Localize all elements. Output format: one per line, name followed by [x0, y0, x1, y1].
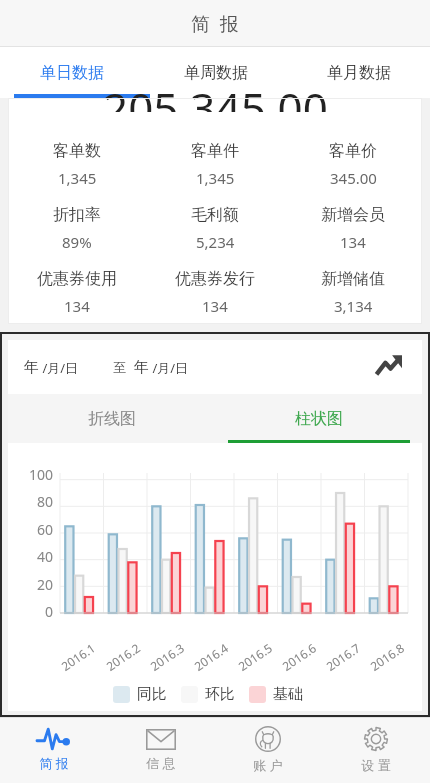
staticText: 同比 — [137, 685, 167, 704]
staticText: 折扣率 — [53, 205, 101, 225]
staticText: 1,345 — [58, 168, 97, 188]
button[interactable]: 毛利额 — [146, 196, 284, 260]
staticText: 新增储值 — [321, 269, 385, 289]
staticText: 优惠券使用 — [37, 269, 117, 289]
staticText: /月/日 — [39, 359, 79, 377]
staticText: 简 报 — [39, 754, 69, 772]
staticText: 3,134 — [334, 296, 373, 316]
staticText: 单日数据 — [40, 63, 104, 83]
staticText: 信 息 — [146, 754, 176, 772]
button[interactable]: 单月数据 — [287, 47, 430, 98]
staticText: 账 户 — [253, 756, 283, 774]
staticText: 设 置 — [361, 756, 391, 774]
staticText: 5,234 — [196, 232, 235, 252]
staticText: 2016.5 — [235, 639, 275, 674]
button[interactable]: 环比 — [181, 685, 235, 704]
button[interactable]: 折扣率 — [8, 196, 146, 260]
button[interactable]: 客单件 — [146, 132, 284, 196]
staticText: 年 — [134, 358, 149, 377]
staticText: 100 — [29, 465, 54, 484]
button[interactable]: 单日数据 — [0, 47, 144, 98]
staticText: 2016.6 — [279, 639, 319, 674]
button[interactable]: 设 置 — [322, 717, 430, 783]
staticText: 2016.3 — [147, 639, 187, 674]
button[interactable]: 简 报 — [0, 717, 107, 783]
staticText: 优惠券发行 — [175, 269, 255, 289]
staticText: 134 — [64, 296, 90, 316]
staticText: 折线图 — [88, 409, 136, 429]
staticText: 134 — [202, 296, 228, 316]
staticText: 年 — [24, 358, 39, 377]
button[interactable]: 新增会员 — [284, 196, 422, 260]
staticText: 环比 — [205, 685, 235, 704]
button[interactable]: 基础 — [249, 685, 303, 704]
button[interactable]: 年 — [24, 358, 79, 377]
button[interactable]: 信 息 — [107, 717, 214, 783]
staticText: 客单价 — [329, 141, 377, 161]
button[interactable]: 客单数 — [8, 132, 146, 196]
button[interactable]: Trend — [372, 350, 406, 384]
staticText: 0 — [45, 602, 54, 621]
staticText: 20 — [37, 575, 54, 594]
staticText: 2016.8 — [367, 639, 407, 674]
button[interactable]: 客单价 — [284, 132, 422, 196]
staticText: 新增会员 — [321, 205, 385, 225]
button[interactable]: 折线图 — [8, 394, 215, 443]
staticText: 40 — [37, 547, 54, 566]
staticText: 89% — [62, 232, 92, 252]
staticText: 基础 — [273, 685, 303, 704]
staticText: 134 — [340, 232, 366, 252]
staticText: 2016.1 — [58, 639, 98, 674]
staticText: 单月数据 — [327, 63, 391, 83]
staticText: 2016.7 — [323, 639, 363, 674]
button[interactable]: 柱状图 — [215, 394, 422, 443]
button[interactable]: 优惠券使用 — [8, 260, 146, 324]
staticText: 80 — [37, 492, 54, 511]
staticText: 简 报 — [191, 11, 239, 37]
staticText: 客单数 — [53, 141, 101, 161]
staticText: 2016.4 — [191, 639, 231, 674]
staticText: 1,345 — [196, 168, 235, 188]
button[interactable]: 账 户 — [214, 717, 322, 783]
staticText: 柱状图 — [295, 409, 343, 429]
button[interactable]: 优惠券发行 — [146, 260, 284, 324]
staticText: 单周数据 — [184, 63, 248, 83]
staticText: 205,345.00 — [103, 78, 328, 112]
staticText: 客单件 — [191, 141, 239, 161]
staticText: /月/日 — [149, 359, 189, 377]
staticText: 2016.2 — [103, 639, 143, 674]
button[interactable]: 新增储值 — [284, 260, 422, 324]
button[interactable]: 年 — [134, 358, 189, 377]
staticText: 60 — [37, 520, 54, 539]
staticText: 毛利额 — [191, 205, 239, 225]
button[interactable]: 单周数据 — [144, 47, 287, 98]
button[interactable]: 同比 — [113, 685, 167, 704]
staticText: 345.00 — [330, 168, 377, 188]
staticText: 至 — [113, 359, 126, 375]
